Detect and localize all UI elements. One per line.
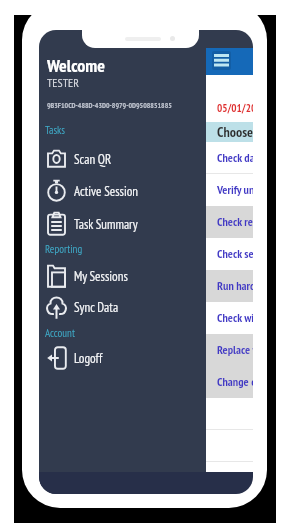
- staticText: Welcome: [47, 54, 105, 77]
- staticText: Reporting: [45, 242, 83, 256]
- staticText: Sync Data: [74, 299, 119, 316]
- staticText: 9B3F10CD-488D-43D0-8979-0D9508851885: [47, 100, 172, 110]
- button[interactable]: Check seat belts: [206, 238, 253, 270]
- staticText: Run hardware diagnostics: [217, 278, 253, 294]
- staticText: Tasks: [45, 123, 66, 137]
- button[interactable]: Choose a vehicle: [206, 122, 253, 142]
- button[interactable]: [206, 430, 253, 462]
- staticText: Check dashboard warning lights: [217, 150, 253, 166]
- staticText: Check seat belts: [217, 246, 253, 262]
- button[interactable]: Replace wiper blades: [206, 334, 253, 366]
- staticText: Logoff: [74, 350, 103, 367]
- button[interactable]: Task Summary: [39, 208, 206, 240]
- button[interactable]: [206, 398, 253, 430]
- button[interactable]: Check dashboard warning lights: [206, 142, 253, 174]
- button[interactable]: Verify underbody clearance: [206, 174, 253, 206]
- button[interactable]: Change engine oil: [206, 366, 253, 398]
- staticText: Account: [45, 326, 75, 340]
- button[interactable]: Run hardware diagnostics: [206, 270, 253, 302]
- button[interactable]: Active Session: [39, 175, 206, 207]
- staticText: Check windshield wipers: [217, 310, 253, 326]
- button[interactable]: Check registration papers: [206, 206, 253, 238]
- staticText: Task Summary: [74, 216, 138, 233]
- staticText: 05/01/2019: [217, 101, 253, 115]
- button[interactable]: Scan QR: [39, 143, 206, 175]
- staticText: Replace wiper blades: [217, 342, 253, 358]
- staticText: Check registration papers: [217, 214, 253, 230]
- button[interactable]: Sync Data: [39, 291, 206, 323]
- staticText: Scan QR: [74, 151, 112, 168]
- staticText: Active Session: [74, 183, 139, 200]
- button[interactable]: My Sessions: [39, 260, 206, 292]
- button[interactable]: Logoff: [39, 342, 206, 374]
- button[interactable]: Check windshield wipers: [206, 302, 253, 334]
- staticText: Choose a vehicle: [217, 123, 253, 141]
- staticText: Change engine oil: [217, 374, 253, 390]
- staticText: My Sessions: [74, 268, 128, 285]
- button[interactable]: Open navigation drawer: [211, 50, 232, 71]
- staticText: TESTER: [47, 75, 79, 91]
- staticText: Verify underbody clearance: [217, 182, 253, 198]
